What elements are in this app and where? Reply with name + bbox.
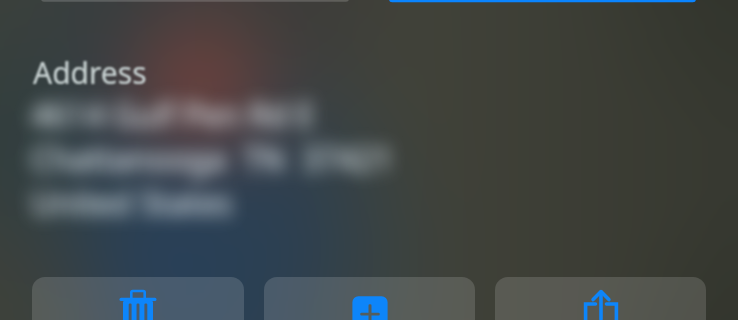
button[interactable]: Add [264, 277, 475, 320]
button[interactable]: Share [495, 277, 706, 320]
staticText: United States [31, 181, 233, 225]
button[interactable]: Delete [32, 277, 244, 320]
staticText: Address [33, 52, 147, 93]
staticText: 4614 Gulf Pen Rd E [31, 93, 315, 137]
staticText: Chattanooga TN 37421 [31, 137, 394, 181]
